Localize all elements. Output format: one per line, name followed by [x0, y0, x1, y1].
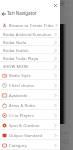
button[interactable]: Cheel drums: [0, 80, 60, 90]
button[interactable]: Spot & Outdoor: [0, 120, 60, 130]
button[interactable]: Ayalando: [0, 90, 60, 100]
button[interactable]: SHOW MORE: [0, 62, 60, 70]
button[interactable]: Category: [0, 140, 60, 150]
staticText: Bodat Tudai Playa: [3, 56, 39, 61]
staticText: Radio Style: [9, 73, 31, 78]
staticText: Bodat Skola: [3, 40, 27, 45]
staticText: Tari Navigator: [7, 10, 37, 16]
button[interactable]: Radio Style: [0, 70, 60, 80]
button[interactable]: Bodat Scalati: [0, 46, 60, 54]
button[interactable]: Close: [52, 2, 59, 9]
staticText: Browse to Create Tribe: [9, 23, 54, 28]
staticText: Bodat Scalati: [3, 48, 29, 53]
button[interactable]: Bodat Skola: [0, 38, 60, 46]
button[interactable]: Output Standard: [0, 130, 60, 140]
staticText: Arms & Rules: [9, 103, 36, 108]
button[interactable]: Browse to Create Tribe: [0, 20, 60, 30]
staticText: Spot & Outdoor: [9, 123, 40, 128]
button[interactable]: Bodat Android Kumukun: [0, 30, 60, 38]
staticText: Ayalando: [9, 93, 28, 98]
staticText: Bodat Android Kumukun: [3, 32, 52, 37]
staticText: Cheel drums: [9, 83, 34, 88]
staticText: SHOW MORE: [3, 64, 29, 69]
button[interactable]: Tari Navigator: [0, 9, 60, 17]
staticText: Cr to Players: [9, 113, 34, 118]
staticText: Output Standard: [9, 133, 43, 138]
button[interactable]: Cr to Players: [0, 110, 60, 120]
button[interactable]: Arms & Rules: [0, 100, 60, 110]
staticText: Category: [9, 143, 27, 148]
button[interactable]: Bodat Tudai Playa: [0, 54, 60, 62]
